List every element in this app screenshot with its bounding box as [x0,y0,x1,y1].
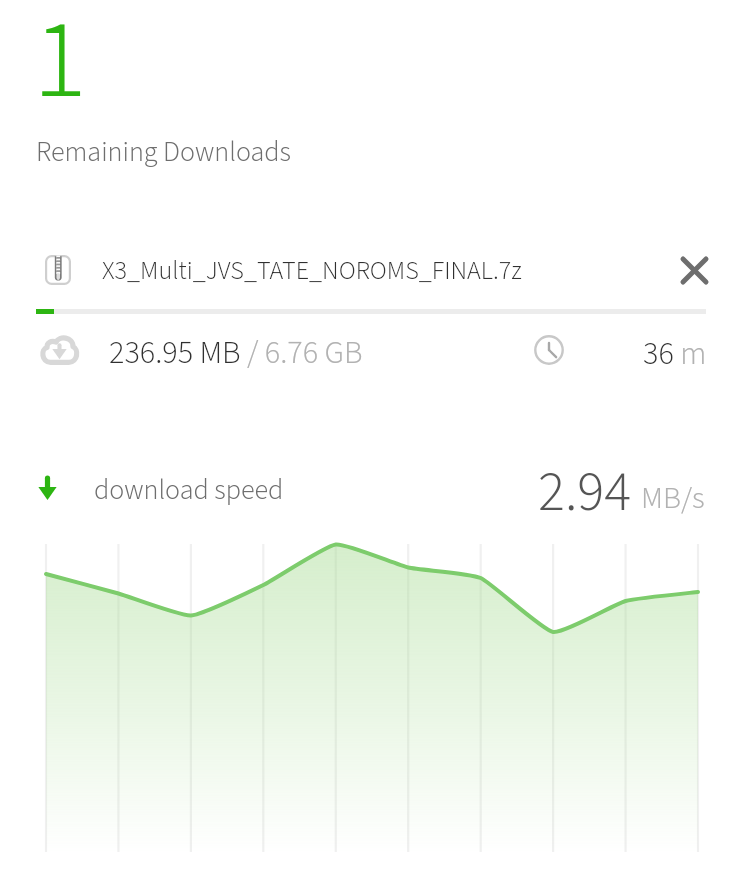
staticText: 36 m [643,331,707,377]
staticText: 1 [33,0,87,140]
staticText: download speed [94,470,284,510]
staticText: Remaining Downloads [36,132,291,172]
staticText: 2.94 [538,453,632,533]
button[interactable]: Time remaining [534,335,564,365]
staticText: X3_Multi_JVS_TATE_NOROMS_FINAL.7z [102,252,522,289]
staticText: 236.95 MB / 6.76 GB [109,330,363,376]
button[interactable]: Download speed [28,470,67,506]
button[interactable]: Cancel download [672,248,716,292]
staticText: MB/s [641,476,705,520]
